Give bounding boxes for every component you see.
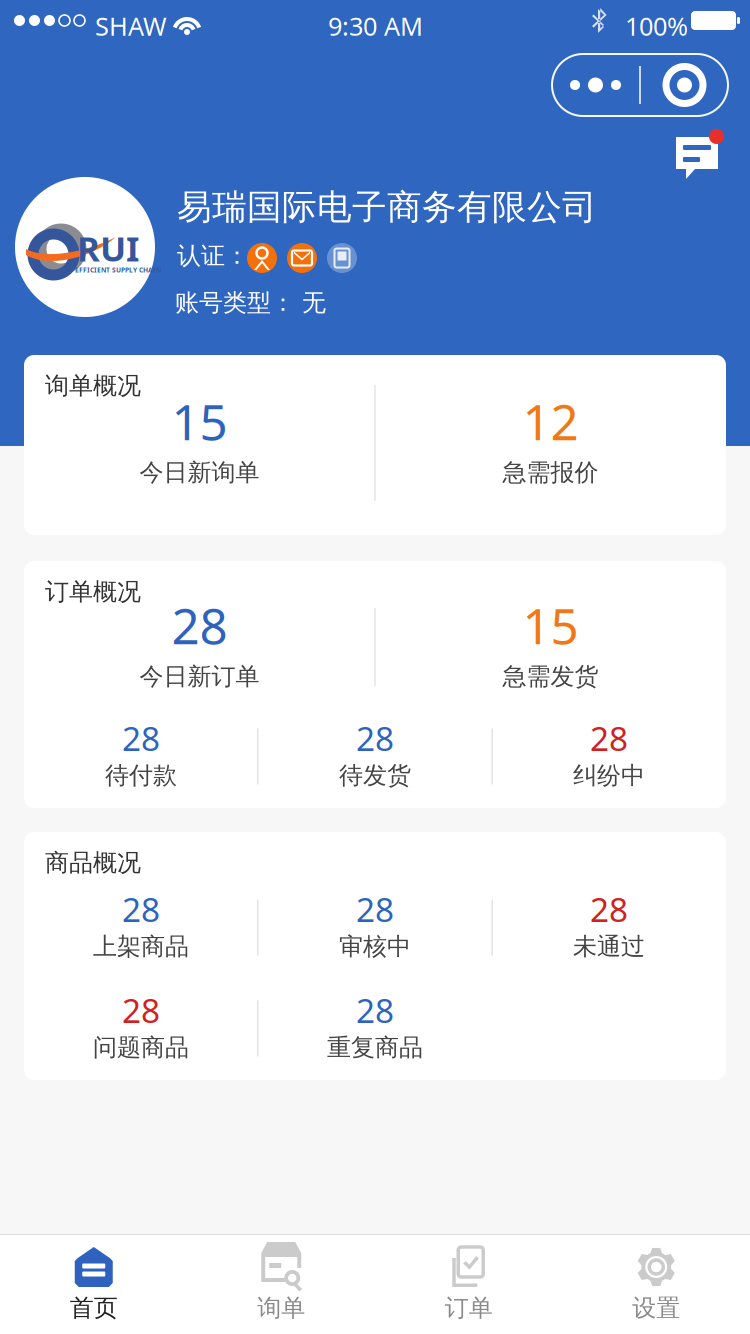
button[interactable]: 12 [375,402,726,484]
staticText: 9:30 AM [328,9,423,43]
staticText: 100% [625,9,688,43]
staticText: 今日新询单 [139,458,259,487]
staticText: 账号类型： 无 [175,288,326,317]
staticText: RUI [77,225,139,271]
staticText: 急需发货 [502,662,598,691]
button[interactable]: 28 [258,895,492,960]
staticText: 重复商品 [327,1033,423,1062]
staticText: 首页 [70,1293,118,1323]
staticText: 急需报价 [502,458,598,487]
button[interactable]: 28 [492,895,726,960]
staticText: 商品概况 [45,848,141,877]
staticText: 易瑞国际电子商务有限公司 [177,186,597,229]
staticText: 28 [356,716,394,760]
staticText: 审核中 [339,932,411,961]
staticText: 12 [522,388,578,454]
staticText: 待发货 [339,761,411,790]
staticText: 询单 [257,1293,305,1323]
button[interactable]: 28 [24,606,375,688]
staticText: 28 [590,716,628,760]
staticText: EFFICIENT SUPPLY CHAIN [75,266,161,274]
staticText: 设置 [632,1293,680,1323]
staticText: 认证： [177,241,249,270]
staticText: 28 [356,988,394,1032]
button[interactable]: 询单 [187,1235,375,1334]
button[interactable]: 28 [24,996,258,1061]
button[interactable]: 28 [24,895,258,960]
staticText: 28 [171,592,227,658]
button[interactable]: 28 [492,724,726,789]
button[interactable]: 28 [258,996,492,1061]
staticText: 未通过 [573,932,645,961]
staticText: 订单 [445,1293,493,1323]
staticText: 纠纷中 [573,761,645,790]
staticText: 上架商品 [93,932,189,961]
staticText: 今日新订单 [139,662,259,691]
button[interactable]: 28 [258,724,492,789]
button[interactable]: 15 [24,402,375,484]
button[interactable]: 订单 [375,1235,562,1334]
staticText: 28 [356,887,394,931]
staticText: 28 [122,887,160,931]
staticText: 28 [122,988,160,1032]
staticText: 28 [590,887,628,931]
staticText: 询单概况 [45,371,141,400]
staticText: 问题商品 [93,1033,189,1062]
staticText: 待付款 [105,761,177,790]
staticText: SHAW [95,9,167,43]
button[interactable]: 首页 [0,1235,187,1334]
staticText: 订单概况 [45,577,141,606]
button[interactable]: 15 [375,606,726,688]
button[interactable]: Messages [672,128,726,182]
staticText: 28 [122,716,160,760]
staticText: 15 [522,592,578,658]
button[interactable]: More [552,54,639,116]
button[interactable]: 28 [24,724,258,789]
button[interactable]: 设置 [562,1235,750,1334]
button[interactable]: Close [641,54,728,116]
staticText: 15 [171,388,227,454]
